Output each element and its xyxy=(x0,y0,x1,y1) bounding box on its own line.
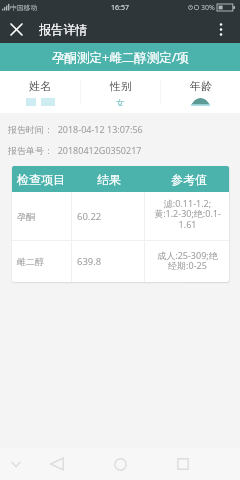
staticText: 滤:0.11-1.2; 黄:1.2-30;绝:0.1- 1.61 xyxy=(154,197,221,231)
staticText: 女 xyxy=(116,98,125,106)
button[interactable]: Close xyxy=(1,15,31,43)
button[interactable]: Hide xyxy=(5,453,27,475)
staticText: 16:57 xyxy=(111,3,129,13)
staticText: 报告详情 xyxy=(39,22,88,37)
staticText: 检查项目 xyxy=(17,172,65,187)
staticText: 报告时间： 2018-04-12 13:07:56 xyxy=(8,123,143,135)
staticText: 孕酮 xyxy=(17,211,35,222)
staticText: 雌二醇 xyxy=(17,256,44,267)
button[interactable]: Back xyxy=(44,451,70,477)
button[interactable]: More options xyxy=(207,15,235,43)
button[interactable]: 雌二醇 xyxy=(12,241,229,282)
staticText: 报告单号： 20180412G0350217 xyxy=(8,144,142,156)
button[interactable]: Home xyxy=(107,451,133,477)
button[interactable]: 姓名 xyxy=(0,71,80,113)
staticText: 30% xyxy=(201,3,215,13)
staticText: 中国移动 xyxy=(10,3,38,12)
button[interactable]: Recent apps xyxy=(170,451,196,477)
staticText: 参考值 xyxy=(171,172,207,187)
staticText: 年龄 xyxy=(190,79,212,93)
staticText: 60.22 xyxy=(77,210,102,223)
staticText: 性别 xyxy=(110,79,132,93)
staticText: 成人:25-309;绝 经期:0-25 xyxy=(157,249,218,272)
staticText: 姓名 xyxy=(29,79,51,93)
staticText: 639.8 xyxy=(77,255,102,268)
button[interactable]: 孕酮 xyxy=(12,192,229,240)
staticText: 孕酮测定+雌二醇测定/项 xyxy=(52,49,189,66)
button[interactable]: 性别 xyxy=(81,71,160,113)
button[interactable]: 年龄 xyxy=(161,71,240,113)
staticText: 结果 xyxy=(97,172,121,187)
